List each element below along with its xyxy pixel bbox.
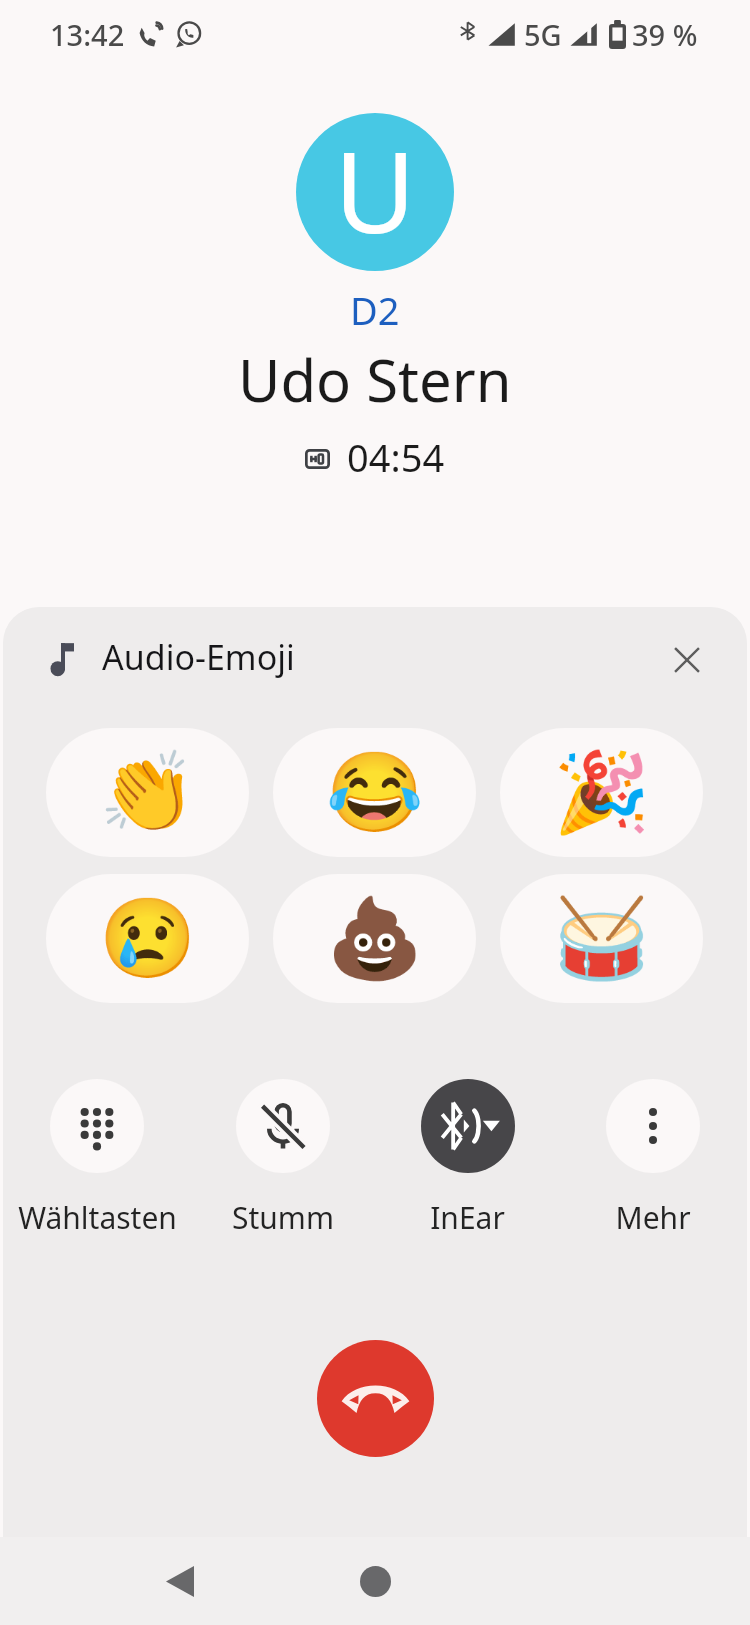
staticText: U xyxy=(334,113,416,266)
button[interactable]: InEar xyxy=(375,1079,560,1238)
staticText: 😂 xyxy=(326,747,424,839)
staticText: Audio-Emoji xyxy=(102,634,295,680)
staticText: 04:54 xyxy=(347,431,445,483)
staticText: Stumm xyxy=(232,1197,334,1238)
button[interactable]: Mehr xyxy=(560,1079,745,1238)
button[interactable]: 🎉 xyxy=(500,728,703,857)
button[interactable]: Close xyxy=(657,630,717,690)
staticText: Wähltasten xyxy=(18,1197,177,1238)
button[interactable]: End call xyxy=(317,1340,434,1457)
staticText: 🎉 xyxy=(553,747,651,839)
staticText: D2 xyxy=(350,284,400,336)
button[interactable]: Home xyxy=(345,1551,405,1611)
staticText: 😢 xyxy=(99,893,197,985)
button[interactable]: 😂 xyxy=(273,728,476,857)
staticText: 💩 xyxy=(326,893,424,985)
staticText: 5G xyxy=(524,15,562,54)
button[interactable]: Back xyxy=(150,1551,210,1611)
button[interactable]: 👏 xyxy=(46,728,249,857)
button[interactable]: 💩 xyxy=(273,874,476,1003)
staticText: 13:42 xyxy=(50,15,125,54)
staticText: 🥁 xyxy=(553,893,651,985)
staticText: 👏 xyxy=(99,747,197,839)
staticText: InEar xyxy=(430,1197,505,1238)
staticText: Mehr xyxy=(615,1197,691,1238)
staticText: Udo Stern xyxy=(238,340,512,419)
button[interactable]: 😢 xyxy=(46,874,249,1003)
button[interactable]: 🥁 xyxy=(500,874,703,1003)
button[interactable]: Wähltasten xyxy=(4,1079,190,1238)
staticText: 39 % xyxy=(632,15,698,54)
button[interactable]: Stumm xyxy=(190,1079,375,1238)
